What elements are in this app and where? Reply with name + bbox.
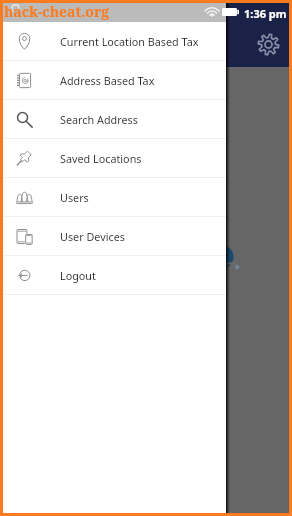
staticText: 1:36 pm	[244, 6, 287, 21]
staticText: hack-cheat.org	[4, 2, 110, 21]
button[interactable]: Users	[3, 178, 226, 217]
staticText: Users	[60, 190, 89, 205]
button[interactable]: Address Based Tax	[3, 61, 226, 100]
button[interactable]: Logout	[3, 256, 226, 295]
button[interactable]: Search Address	[3, 100, 226, 139]
staticText: Current Location Based Tax	[60, 34, 199, 49]
staticText: Logout	[60, 268, 96, 283]
staticText: Saved Locations	[60, 151, 142, 166]
button[interactable]: Current Location Based Tax	[3, 22, 226, 61]
button[interactable]: User Devices	[3, 217, 226, 256]
staticText: Address Based Tax	[60, 73, 155, 88]
button[interactable]: Saved Locations	[3, 139, 226, 178]
button[interactable]: Settings	[250, 26, 286, 62]
staticText: Search Address	[60, 112, 138, 127]
staticText: User Devices	[60, 229, 125, 244]
